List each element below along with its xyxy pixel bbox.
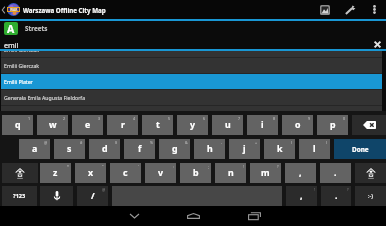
staticText: Generała Emila Augusta Fieldorfa [4, 94, 86, 101]
button[interactable]: l [299, 139, 330, 159]
button[interactable]: :-) [355, 186, 386, 206]
staticText: s [67, 143, 72, 155]
staticText: t [156, 119, 160, 131]
button[interactable]: s [54, 139, 85, 159]
button[interactable]: o [282, 115, 313, 135]
button[interactable]: Recent apps [232, 206, 276, 226]
staticText: ? [347, 187, 349, 192]
button[interactable]: A [0, 21, 386, 36]
button[interactable]: e [72, 115, 103, 135]
button[interactable]: Emilii Plater [1, 74, 382, 89]
staticText: . [335, 190, 338, 202]
button[interactable]: , [286, 186, 317, 206]
button[interactable]: , [285, 163, 316, 183]
button[interactable]: Done [334, 139, 386, 159]
staticText: 8 [273, 116, 276, 121]
button[interactable]: Emilii Gierczak [1, 58, 382, 73]
button[interactable]: . [321, 186, 351, 206]
staticText: 9 [308, 116, 311, 121]
button[interactable]: c [110, 163, 141, 183]
button[interactable]: a [19, 139, 50, 159]
button[interactable]: ?123 [2, 186, 37, 206]
staticText: & [185, 140, 188, 145]
staticText: 2 [63, 116, 66, 121]
staticText: 3 [98, 116, 101, 121]
staticText: l [313, 143, 316, 155]
staticText: ; [208, 164, 209, 169]
button[interactable]: u [212, 115, 243, 135]
staticText: q [15, 119, 21, 131]
staticText: j [243, 143, 246, 155]
staticText: h [207, 143, 213, 155]
button[interactable]: More options [367, 0, 382, 19]
staticText: b [193, 167, 199, 179]
button[interactable]: Back [112, 206, 156, 226]
button[interactable]: x [75, 163, 106, 183]
button[interactable]: p [317, 115, 348, 135]
button[interactable]: y [177, 115, 208, 135]
staticText: n [228, 167, 234, 179]
staticText: 7 [238, 116, 241, 121]
staticText: Done [352, 145, 369, 154]
staticText: 4 [133, 116, 136, 121]
staticText: u [225, 119, 231, 131]
staticText: ) [326, 140, 328, 145]
button[interactable]: f [124, 139, 155, 159]
staticText: p [330, 119, 336, 131]
button[interactable]: b [180, 163, 211, 183]
button[interactable]: q [2, 115, 33, 135]
staticText: % [150, 140, 153, 145]
staticText: # [80, 140, 83, 145]
button[interactable]: t [142, 115, 173, 135]
button[interactable]: Generała Emila Augusta Fieldorfa [1, 90, 382, 105]
staticText: ' [138, 164, 139, 169]
button[interactable]: . [320, 163, 351, 183]
staticText: z [53, 167, 58, 179]
button[interactable]: z [40, 163, 71, 183]
staticText: m [261, 167, 270, 179]
button[interactable]: / [77, 186, 108, 206]
staticText: o [295, 119, 301, 131]
button[interactable]: v [145, 163, 176, 183]
staticText: : [173, 164, 174, 169]
staticText: Emilii Gierczak [4, 62, 40, 69]
button[interactable]: Show map [315, 0, 335, 19]
staticText: y [190, 119, 196, 131]
button[interactable]: Settings [340, 0, 360, 19]
button[interactable]: g [159, 139, 190, 159]
button[interactable]: Navigate up [0, 0, 106, 19]
staticText: Emilii Plater [4, 78, 33, 85]
staticText: f [138, 143, 142, 155]
other: Navigate up [2, 6, 5, 14]
button[interactable]: j [229, 139, 260, 159]
staticText: emil [4, 40, 19, 50]
button[interactable]: i [247, 115, 278, 135]
button[interactable]: Voice input [40, 186, 73, 206]
button[interactable]: Home [171, 206, 215, 226]
staticText: x [88, 167, 94, 179]
button[interactable]: n [215, 163, 246, 183]
staticText: 5 [168, 116, 171, 121]
button[interactable]: Shift [355, 163, 386, 183]
staticText: @ [44, 140, 48, 145]
staticText: , [299, 167, 302, 179]
button[interactable]: w [37, 115, 68, 135]
staticText: A [7, 22, 15, 35]
staticText: WAR [10, 8, 18, 11]
staticText: :-) [368, 192, 373, 200]
staticText: Emilii Gierczak [4, 51, 40, 52]
staticText: . [334, 167, 337, 179]
button[interactable]: Clear text [371, 38, 384, 51]
button[interactable]: r [107, 115, 138, 135]
button[interactable]: k [264, 139, 295, 159]
button[interactable]: m [250, 163, 281, 183]
staticText: , [300, 190, 303, 202]
button[interactable]: Shift [2, 163, 38, 183]
button[interactable]: h [194, 139, 225, 159]
staticText: v [158, 167, 164, 179]
staticText: ! [314, 187, 315, 192]
button[interactable]: d [89, 139, 120, 159]
button[interactable]: Backspace [352, 115, 386, 135]
